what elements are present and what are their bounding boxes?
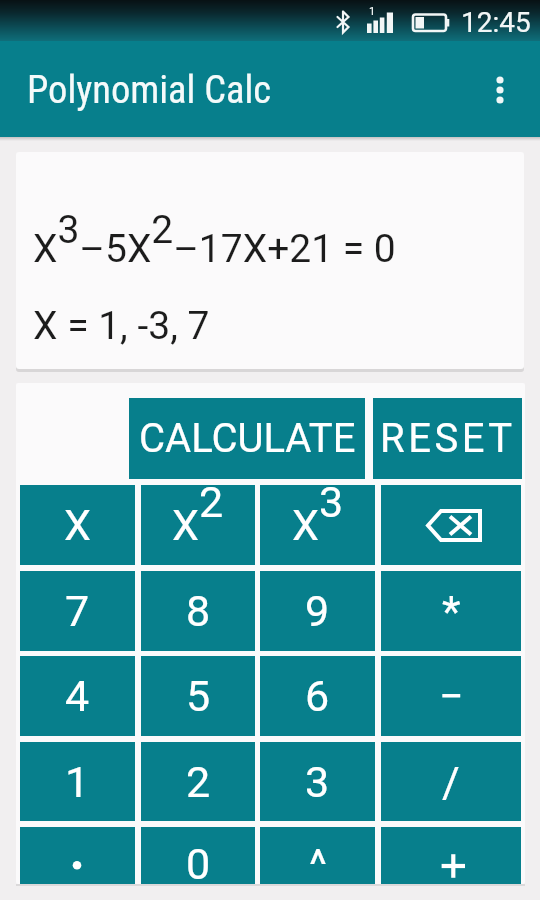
staticText: 0 <box>186 839 211 889</box>
staticText: X2 <box>172 477 224 550</box>
staticText: 7 <box>65 586 90 636</box>
staticText: X3–5X2–17X+21 = 0 <box>33 207 396 272</box>
staticText: 6 <box>305 671 330 721</box>
staticText: X = 1, -3, 7 <box>33 303 210 349</box>
staticText: 2 <box>186 757 211 807</box>
staticText: 1 <box>65 757 90 807</box>
staticText: RESET <box>380 415 516 462</box>
staticText: X3 <box>292 477 344 550</box>
staticText: * <box>442 586 461 636</box>
staticText: / <box>442 757 460 807</box>
staticText: Polynomial Calc <box>27 67 272 112</box>
staticText: 3 <box>305 757 330 807</box>
staticText: 8 <box>186 586 211 636</box>
staticText: 9 <box>305 586 330 636</box>
staticText: 12:45 <box>461 6 531 39</box>
staticText: CALCULATE <box>139 415 356 462</box>
staticText: − <box>439 671 464 721</box>
staticText: 4 <box>65 671 90 721</box>
staticText: 5 <box>186 671 211 721</box>
staticText: X <box>64 500 91 550</box>
staticText: 1 <box>369 5 376 18</box>
staticText: ^ <box>309 839 327 889</box>
